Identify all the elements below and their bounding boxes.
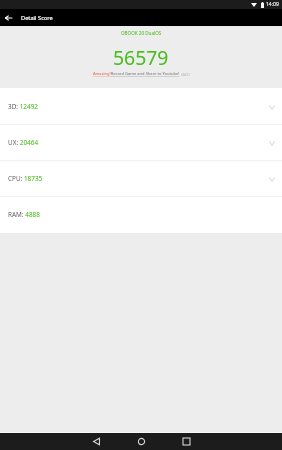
- button[interactable]: UX: 20464: [0, 125, 282, 161]
- button[interactable]: CPU: 18735: [0, 161, 282, 197]
- button[interactable]: Recent apps: [164, 433, 209, 450]
- staticText: UX: 20464: [8, 138, 39, 147]
- staticText: 14:09: [266, 1, 279, 8]
- staticText: 56579: [113, 44, 169, 70]
- button[interactable]: Back: [0, 9, 17, 26]
- staticText: RAM: 4888: [8, 210, 40, 219]
- button[interactable]: 3D: 12492: [0, 89, 282, 125]
- staticText: Detail Score: [21, 14, 53, 22]
- button[interactable]: Home: [119, 433, 164, 450]
- staticText: 3D: 12492: [8, 102, 38, 111]
- button[interactable]: Back: [74, 433, 119, 450]
- button[interactable]: Amazing!Record Game and Share to Youtube…: [93, 71, 180, 77]
- staticText: (AD): [181, 71, 190, 77]
- staticText: CPU: 18735: [8, 174, 43, 183]
- staticText: OBOOK 20 DualOS: [121, 30, 162, 36]
- button[interactable]: RAM: 4888: [0, 197, 282, 233]
